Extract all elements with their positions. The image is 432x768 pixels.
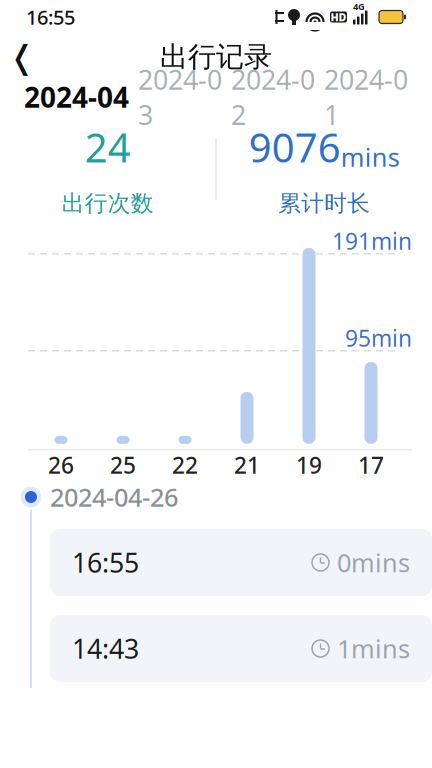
staticText: 26 <box>48 450 74 480</box>
staticText: 2024-04-26 <box>50 480 178 514</box>
staticText: 17 <box>358 450 384 480</box>
staticText: 2024-04 <box>24 78 129 116</box>
staticText: 2024-03 <box>138 62 222 132</box>
button[interactable]: 16:55 <box>50 529 432 596</box>
staticText: 2024-01 <box>324 62 408 132</box>
staticText: 16:55 <box>26 4 75 30</box>
staticText: 出行次数 <box>62 190 154 217</box>
button[interactable]: 2024-03 <box>138 62 222 132</box>
staticText: 16:55 <box>72 545 139 580</box>
staticText: 191min <box>332 226 412 256</box>
staticText: ❬ <box>8 39 35 75</box>
button[interactable]: 2024-04 <box>24 78 129 116</box>
button[interactable]: 2024-02 <box>231 62 315 132</box>
staticText: 1mins <box>337 632 410 665</box>
staticText: 9076 <box>249 120 341 174</box>
staticText: HD <box>330 10 346 24</box>
button[interactable]: 2024-01 <box>324 62 408 132</box>
staticText: mins <box>341 140 400 174</box>
staticText: 24 <box>85 120 131 174</box>
staticText: 19 <box>296 450 322 480</box>
staticText: 4G <box>353 0 365 12</box>
button[interactable]: Back <box>0 35 44 79</box>
staticText: 22 <box>172 450 198 480</box>
button[interactable]: 14:43 <box>50 615 432 682</box>
staticText: 0mins <box>337 546 410 579</box>
staticText: 出行记录 <box>160 40 272 74</box>
staticText: 95min <box>345 323 412 353</box>
staticText: 2024-02 <box>231 62 315 132</box>
staticText: 累计时长 <box>278 190 370 217</box>
staticText: 14:43 <box>72 631 139 666</box>
staticText: 25 <box>110 450 136 480</box>
staticText: 21 <box>234 450 260 480</box>
